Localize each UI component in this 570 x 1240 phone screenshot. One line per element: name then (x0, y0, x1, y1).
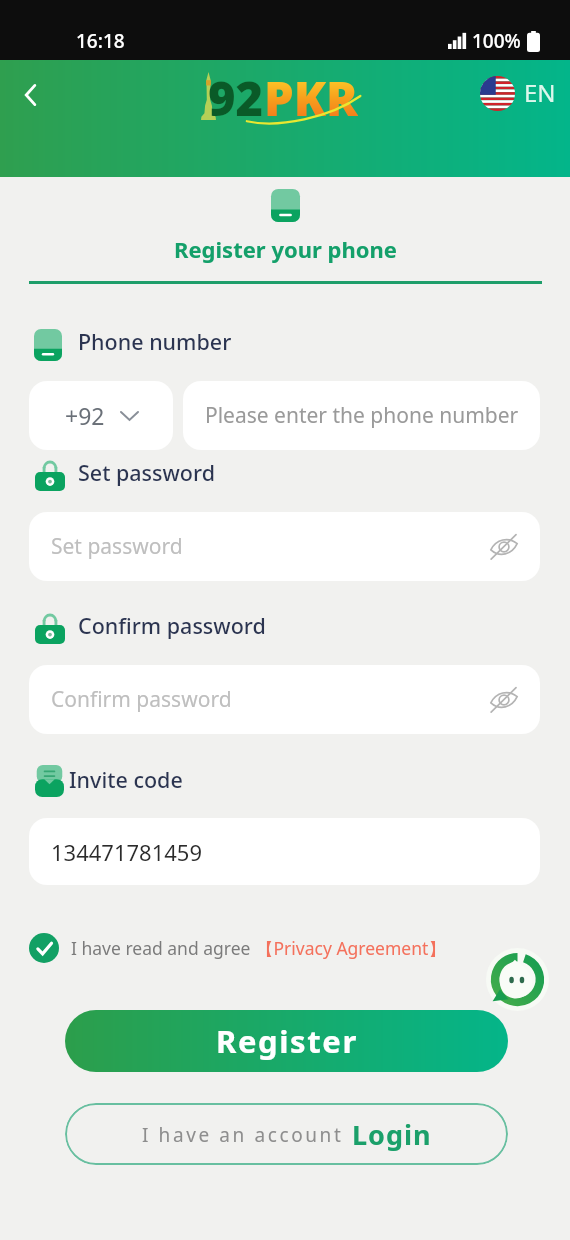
button[interactable]: Show password (484, 680, 524, 720)
button[interactable]: I have an account (65, 1103, 508, 1165)
staticText: PKR (264, 66, 358, 126)
staticText: +92 (65, 400, 105, 431)
staticText: Register (216, 1020, 358, 1062)
staticText: Set password (78, 458, 215, 487)
staticText: Please enter the phone number (205, 401, 519, 430)
staticText: Register your phone (174, 234, 397, 264)
staticText: Phone number (78, 327, 232, 356)
button[interactable]: Show password (484, 527, 524, 567)
staticText: 134471781459 (51, 837, 203, 867)
staticText: Invite code (69, 765, 183, 794)
staticText: 【Privacy Agreement】 (256, 936, 446, 960)
staticText: Confirm password (78, 611, 266, 640)
staticText: 100% (472, 28, 521, 54)
staticText: Confirm password (51, 685, 232, 714)
staticText: EN (524, 76, 556, 109)
button[interactable]: Please enter the phone number (183, 381, 540, 450)
button[interactable]: Set password (29, 512, 540, 581)
staticText: I have an account (142, 1122, 344, 1148)
staticText: I have read and agree (71, 936, 251, 960)
staticText: 16:18 (76, 28, 125, 54)
button[interactable]: Confirm password (29, 665, 540, 734)
button[interactable]: +92 (29, 381, 173, 450)
button[interactable]: 134471781459 (29, 818, 540, 885)
button[interactable]: I have read and agree (29, 933, 446, 963)
staticText: Set password (51, 532, 183, 561)
staticText: Login (352, 1116, 432, 1153)
button[interactable]: Register (65, 1010, 508, 1072)
staticText: 92 (208, 66, 264, 126)
button[interactable]: Back (7, 71, 55, 119)
button[interactable]: EN (480, 76, 556, 111)
button[interactable]: Customer support chat (486, 948, 549, 1011)
